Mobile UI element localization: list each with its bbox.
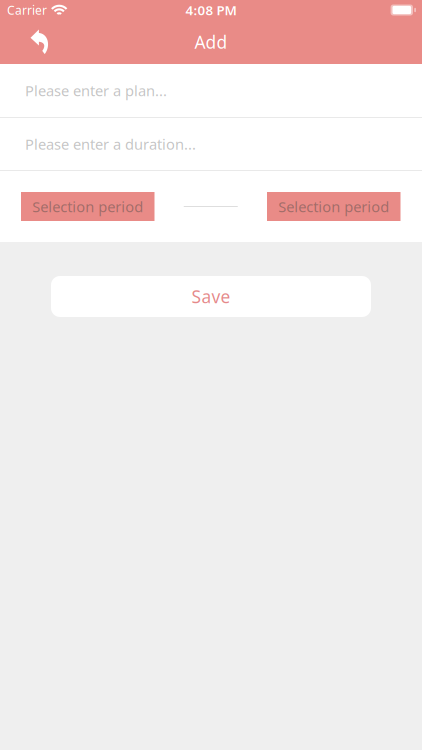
staticText: Selection period [278,197,389,216]
staticText: Carrier [7,2,47,18]
staticText: Please enter a plan... [25,81,167,100]
staticText: Add [194,30,227,53]
button[interactable]: Back [19,20,63,64]
staticText: 4:08 PM [185,1,236,19]
button[interactable]: Selection period [267,192,400,221]
button[interactable]: Selection period [21,192,154,221]
staticText: Selection period [32,197,143,216]
staticText: Save [191,285,230,308]
staticText: Please enter a duration... [25,134,196,154]
button[interactable]: Save [51,276,371,317]
